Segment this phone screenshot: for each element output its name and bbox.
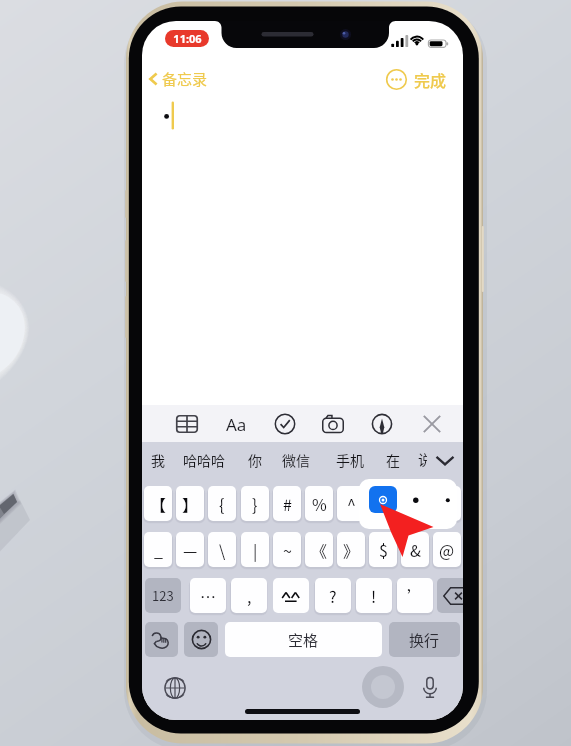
button[interactable]: Table [174, 411, 200, 437]
staticText: · [407, 492, 424, 515]
button[interactable]: Handwriting input [145, 622, 178, 657]
staticText: & [410, 538, 421, 561]
staticText: 】 [182, 492, 199, 515]
button[interactable]: — [176, 532, 204, 567]
button[interactable]: More options [386, 69, 407, 90]
staticText: | [253, 538, 258, 561]
button[interactable]: $ [369, 532, 397, 567]
button[interactable]: 完成 [414, 67, 447, 91]
button[interactable]: Markup [369, 411, 395, 437]
button[interactable]: 123 [145, 578, 181, 613]
button[interactable]: ! [356, 578, 392, 613]
staticText: 换行 [409, 629, 440, 651]
button[interactable]: , [231, 578, 267, 613]
button[interactable]: 哈哈哈 [183, 449, 225, 471]
button[interactable]: Camera [320, 411, 346, 437]
staticText: Aa [226, 413, 247, 435]
staticText: 说 [418, 449, 427, 469]
button[interactable]: @ [433, 532, 461, 567]
staticText: 备忘录 [162, 68, 208, 90]
button[interactable]: & [401, 532, 429, 567]
button[interactable]: 》 [337, 532, 365, 567]
button[interactable]: 我 [151, 449, 165, 471]
staticText: ? [329, 584, 337, 607]
button[interactable]: Close keyboard [419, 411, 445, 437]
staticText: _ [154, 538, 163, 561]
button[interactable]: } [241, 486, 269, 521]
button[interactable]: Delete [437, 578, 463, 613]
staticText: % [312, 492, 327, 515]
button[interactable]: Switch keyboard [164, 677, 186, 699]
button[interactable]: 说 [418, 449, 427, 471]
staticText: 你 [248, 450, 262, 470]
button[interactable]: # [273, 486, 301, 521]
staticText: 我 [151, 450, 165, 470]
button[interactable]: ? [315, 578, 351, 613]
button[interactable]: 你 [248, 449, 262, 471]
staticText: # [283, 492, 292, 515]
staticText: ~ [283, 538, 292, 561]
staticText: 、 [439, 492, 456, 515]
staticText: 【 [150, 492, 167, 515]
button[interactable]: Middle dot key [369, 486, 397, 513]
staticText: 微信 [282, 450, 310, 470]
button[interactable]: ’ [397, 578, 433, 613]
button[interactable]: Dictation [419, 675, 441, 699]
button[interactable]: 《 [305, 532, 333, 567]
staticText: 哈哈哈 [183, 450, 225, 470]
button[interactable]: 换行 [389, 622, 460, 657]
button[interactable]: 手机 [336, 449, 364, 471]
button[interactable]: 微信 [282, 449, 310, 471]
staticText: 123 [152, 586, 174, 605]
button[interactable]: ^ [337, 486, 365, 521]
staticText: 11:06 [173, 31, 202, 46]
button[interactable]: \ [208, 532, 236, 567]
button[interactable]: Emoji [184, 622, 218, 657]
staticText: } [252, 492, 258, 515]
staticText: 手机 [336, 450, 364, 470]
button[interactable]: Checklist [272, 411, 298, 437]
staticText: 《 [311, 538, 328, 561]
button[interactable]: 【 [144, 486, 172, 521]
button[interactable]: _ [144, 532, 172, 567]
button[interactable]: | [241, 532, 269, 567]
button[interactable]: · [401, 486, 429, 521]
button[interactable]: 空格 [225, 622, 382, 657]
staticText: ! [371, 584, 377, 607]
staticText: — [183, 538, 198, 561]
button[interactable]: ~ [273, 532, 301, 567]
button[interactable]: % [305, 486, 333, 521]
staticText: 完成 [414, 68, 447, 91]
staticText: @ [439, 538, 455, 561]
button[interactable]: 在 [386, 449, 400, 471]
button[interactable]: { [208, 486, 236, 521]
button[interactable]: Collapse candidates [434, 449, 456, 471]
staticText: 在 [386, 450, 400, 470]
button[interactable]: Aa [222, 413, 250, 435]
button[interactable]: 、 [433, 486, 461, 521]
staticText: ’ [407, 584, 424, 607]
staticText: { [219, 492, 225, 515]
button[interactable]: 备忘录 [146, 67, 208, 91]
staticText: , [247, 584, 252, 607]
button[interactable]: … [190, 578, 226, 613]
staticText: * [379, 492, 387, 515]
staticText: … [200, 584, 217, 607]
staticText: 空格 [288, 629, 319, 651]
staticText: 》 [343, 538, 360, 561]
button[interactable]: 】 [176, 486, 204, 521]
button[interactable]: * [369, 486, 397, 521]
staticText: $ [379, 538, 388, 561]
staticText: \ [219, 538, 226, 561]
button[interactable]: Kaomoji [273, 578, 309, 613]
staticText: ^ [347, 492, 356, 515]
